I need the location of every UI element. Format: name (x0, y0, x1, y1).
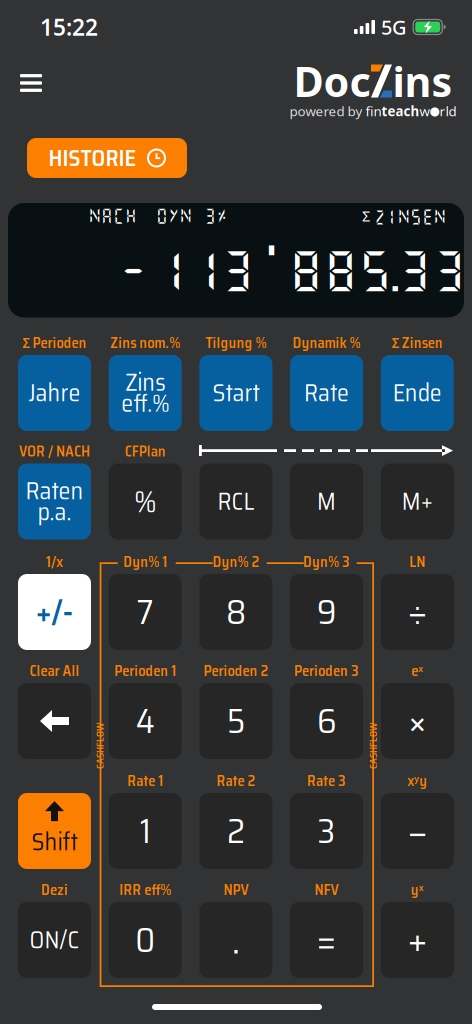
button[interactable] (109, 355, 182, 431)
staticText: CFPlan (125, 440, 166, 463)
staticText: ins (392, 54, 452, 108)
staticText: Rate 2 (216, 769, 255, 793)
staticText: 6 (317, 694, 336, 748)
button[interactable]: ON/C (18, 902, 91, 978)
staticText: Tilgung % (205, 331, 266, 355)
staticText: + (407, 908, 427, 971)
button[interactable]: 7 (109, 574, 182, 650)
button[interactable]: 6 (290, 683, 363, 759)
staticText: eff.% (121, 385, 169, 422)
staticText: Shift (31, 823, 77, 861)
staticText: p.a. (37, 493, 71, 531)
button[interactable]: HISTORIE (27, 138, 187, 178)
staticText: CASHFLOW (350, 738, 396, 754)
staticText: Σ Zinsen (392, 331, 443, 355)
button[interactable]: 2 (199, 793, 272, 869)
button[interactable]: 3 (290, 793, 363, 869)
staticText: − (407, 799, 427, 862)
staticText: 2 (227, 804, 245, 858)
staticText: rld (439, 102, 456, 120)
staticText: RCL (217, 483, 254, 520)
staticText: Start (212, 374, 259, 412)
staticText: Zins (125, 364, 165, 401)
staticText: × (408, 689, 426, 752)
staticText: ON/C (29, 921, 79, 959)
staticText: Dezi (41, 878, 68, 902)
staticText: Perioden 2 (203, 659, 268, 683)
staticText: yˣ (411, 878, 424, 902)
button[interactable]: 4 (109, 683, 182, 759)
staticText: teach (381, 102, 419, 120)
staticText: Perioden 1 (114, 659, 176, 683)
staticText: Dyn% 2 (212, 550, 259, 574)
staticText: 0 (135, 913, 155, 967)
staticText: Dyn% 3 (303, 550, 350, 574)
staticText: 9 (317, 585, 336, 639)
button[interactable]: 1 (109, 793, 182, 869)
button[interactable]: Ende (381, 355, 454, 431)
staticText: eˣ (411, 659, 423, 683)
staticText: = (317, 910, 337, 970)
staticText: Doc (293, 54, 370, 108)
staticText: 7 (137, 585, 154, 639)
staticText: -113'885.33 (129, 244, 453, 296)
button[interactable]: RCL (199, 463, 272, 539)
button[interactable]: . (199, 902, 272, 978)
staticText: CASHFLOW (77, 738, 123, 754)
staticText: 3 (318, 804, 336, 858)
button[interactable]: Rate (290, 355, 363, 431)
staticText: w (419, 102, 429, 120)
button[interactable]: M (290, 463, 363, 539)
staticText: Rate 1 (127, 769, 163, 793)
staticText: LN (409, 550, 425, 574)
staticText: HISTORIE (48, 140, 136, 176)
staticText: Zins nom.% (110, 331, 180, 355)
staticText: Clear All (29, 659, 79, 683)
staticText: Raten (25, 472, 83, 510)
staticText: xʸy (407, 769, 427, 793)
staticText: Dyn% 1 (123, 550, 167, 574)
button[interactable]: Jahre (18, 355, 91, 431)
staticText: 5G (381, 14, 407, 40)
button[interactable]: ÷ (381, 574, 454, 650)
staticText: Jahre (28, 374, 80, 412)
button[interactable]: − (381, 793, 454, 869)
button[interactable]: × (381, 683, 454, 759)
staticText: Dynamik % (293, 331, 361, 355)
staticText: +/- (35, 587, 73, 637)
button[interactable] (18, 463, 91, 539)
staticText: 8 (226, 585, 246, 639)
staticText: IRR eff% (119, 878, 171, 902)
staticText: 1 (140, 804, 151, 858)
staticText: . (232, 910, 240, 970)
staticText: 5 (227, 694, 245, 748)
button[interactable]: 8 (199, 574, 272, 650)
staticText: 15:22 (40, 12, 98, 42)
button[interactable]: Shift (18, 793, 91, 869)
staticText: Σ Perioden (22, 331, 86, 355)
button[interactable]: 9 (290, 574, 363, 650)
button[interactable]: + (381, 902, 454, 978)
staticText: % (134, 477, 156, 526)
staticText: Ende (393, 374, 442, 412)
button[interactable]: 0 (109, 902, 182, 978)
button[interactable]: = (290, 902, 363, 978)
staticText: NACH (89, 206, 137, 225)
staticText: VOR / NACH (19, 440, 90, 463)
staticText: M (317, 483, 336, 520)
button[interactable]: % (109, 463, 182, 539)
staticText: NFV (315, 878, 339, 902)
staticText: powered by (289, 102, 365, 120)
button[interactable]: Backspace (18, 683, 91, 759)
staticText: fin (365, 102, 381, 120)
staticText: Rate 3 (307, 769, 346, 793)
staticText: 1/x (46, 550, 63, 574)
staticText: ● (429, 104, 439, 118)
button[interactable]: Start (199, 355, 272, 431)
staticText: 4 (136, 694, 155, 748)
button[interactable]: M+ (381, 463, 454, 539)
button[interactable]: Menu (15, 67, 47, 99)
staticText: Perioden 3 (294, 659, 359, 683)
button[interactable]: +/- (18, 574, 91, 650)
button[interactable]: 5 (199, 683, 272, 759)
